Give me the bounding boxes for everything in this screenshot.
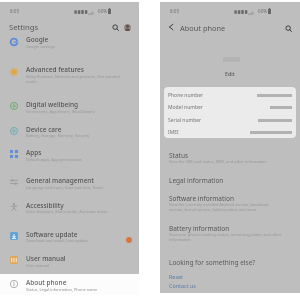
staticText: Settings: [9, 22, 39, 32]
button[interactable]: [160, 114, 300, 126]
staticText: User manual: [26, 263, 50, 268]
staticText: Battery, Storage, Memory, Security: [26, 133, 90, 138]
staticText: View the SIM card status, IMEI, and othe…: [169, 159, 267, 164]
staticText: Voice Assistant, Mono audio, Assistant m…: [26, 209, 108, 214]
staticText: Default apps, App permissions: [26, 157, 82, 162]
staticText: Google: [26, 35, 49, 44]
button[interactable]: Profile: [124, 24, 131, 31]
staticText: Software information: [169, 194, 234, 203]
button[interactable]: [0, 274, 139, 295]
staticText: 8:05: [170, 8, 180, 14]
staticText: 60%: [98, 8, 108, 14]
staticText: Screen time, App timers, Wind Downs: [26, 109, 95, 114]
button[interactable]: Back: [163, 19, 179, 35]
staticText: Download and install, Last update: [26, 238, 88, 243]
button[interactable]: [0, 227, 139, 248]
staticText: Serial number: [168, 117, 202, 124]
staticText: 8:05: [10, 8, 20, 14]
button[interactable]: [160, 147, 300, 167]
staticText: Phone number: [168, 92, 204, 99]
button[interactable]: [0, 32, 139, 53]
staticText: Language and input, Date and time, Reset: [26, 185, 103, 190]
staticText: Edit: [225, 70, 235, 77]
staticText: Bixby Routines, Motions and gestures, On…: [26, 74, 120, 84]
button[interactable]: [160, 126, 300, 138]
staticText: Accessibility: [26, 201, 64, 210]
staticText: Contact us: [169, 282, 196, 289]
staticText: Legal information: [169, 176, 224, 185]
staticText: Device care: [26, 125, 62, 134]
staticText: About phone: [180, 23, 226, 33]
staticText: Digital wellbeing: [26, 100, 79, 109]
button[interactable]: [0, 198, 139, 219]
button[interactable]: [160, 220, 300, 246]
staticText: Apps: [26, 148, 42, 157]
button[interactable]: [0, 97, 139, 118]
staticText: General management: [26, 176, 94, 185]
staticText: Status, Legal information, Phone name: [26, 287, 98, 292]
staticText: Model number: [168, 104, 203, 111]
button[interactable]: [160, 101, 300, 113]
button[interactable]: [0, 173, 139, 194]
button[interactable]: Search: [108, 20, 123, 35]
button[interactable]: Edit: [215, 68, 245, 79]
staticText: Software update: [26, 230, 78, 239]
staticText: IMEI: [168, 129, 179, 136]
button[interactable]: [0, 145, 139, 166]
staticText: Battery information: [169, 224, 230, 233]
button[interactable]: [160, 89, 300, 101]
button[interactable]: [160, 172, 300, 188]
staticText: Advanced features: [26, 65, 84, 74]
button[interactable]: [0, 251, 139, 272]
staticText: Google settings: [26, 44, 55, 49]
button[interactable]: [167, 272, 191, 281]
button[interactable]: [160, 190, 300, 216]
button[interactable]: [0, 122, 139, 143]
button[interactable]: Search: [281, 21, 296, 36]
staticText: User manual: [26, 254, 66, 263]
staticText: View the currently installed Android ver…: [169, 202, 269, 212]
staticText: 60%: [258, 8, 268, 14]
staticText: Status: [169, 151, 189, 160]
staticText: Looking for something else?: [169, 258, 256, 267]
button[interactable]: [167, 281, 199, 290]
staticText: About phone: [26, 278, 67, 287]
staticText: View your phone's battery status, remain…: [169, 232, 282, 242]
button[interactable]: [0, 62, 139, 89]
staticText: Reset: [169, 273, 183, 280]
